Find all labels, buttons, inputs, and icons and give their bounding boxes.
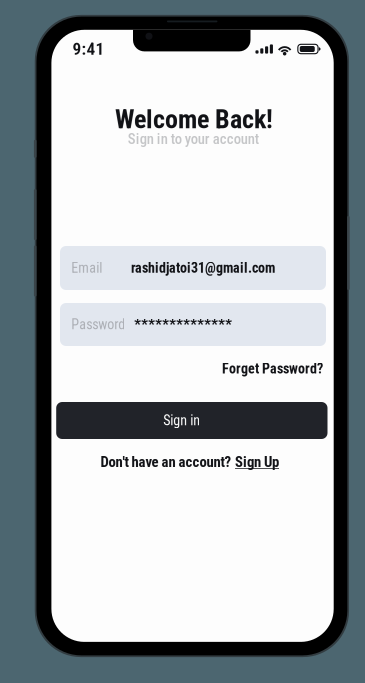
staticText: Don't have an account? [101, 453, 232, 471]
button[interactable]: Sign in [56, 402, 327, 439]
staticText: Password [71, 316, 125, 333]
staticText: Sign in [163, 412, 200, 429]
staticText: rashidjatoi31@gmail.com [131, 260, 275, 276]
staticText: Welcome Back! [115, 104, 273, 135]
staticText: Forget Password? [222, 361, 323, 377]
staticText: Sign in to your account [128, 130, 259, 148]
staticText: 9:41 [73, 39, 105, 59]
staticText: ************** [134, 316, 232, 333]
staticText: Sign Up [235, 453, 279, 471]
button[interactable]: Don't have an account? [101, 452, 279, 472]
button[interactable]: Forget Password? [173, 358, 323, 380]
staticText: Email [71, 260, 102, 276]
